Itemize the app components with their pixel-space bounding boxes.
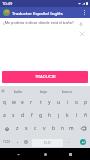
button[interactable]: a: [0, 109, 9, 122]
button[interactable]: z: [13, 122, 22, 135]
staticText: b: [52, 125, 56, 132]
staticText: baño: [14, 89, 23, 94]
staticText: TRADUCIR: [35, 74, 56, 80]
button[interactable]: t: [36, 96, 45, 109]
button[interactable]: .: [64, 135, 74, 148]
staticText: p: [84, 99, 88, 106]
button[interactable]: e: [18, 96, 27, 109]
button[interactable]: bajo: [31, 86, 55, 96]
button[interactable]: Voice input: [77, 20, 85, 28]
button[interactable]: u: [54, 96, 63, 109]
button[interactable]: Clear text: [78, 30, 85, 37]
staticText: s: [12, 112, 15, 119]
staticText: t: [40, 99, 42, 106]
button[interactable]: baño: [6, 86, 31, 96]
staticText: c: [34, 125, 37, 132]
button[interactable]: More suggestions: [0, 86, 6, 96]
button[interactable]: Recent apps: [64, 148, 77, 160]
staticText: z: [16, 125, 19, 132]
staticText: f: [31, 112, 33, 119]
staticText: g: [39, 112, 43, 119]
staticText: h: [48, 112, 52, 119]
button[interactable]: Emoji: [21, 135, 31, 148]
button[interactable]: f: [27, 109, 36, 122]
button[interactable]: v: [40, 122, 49, 135]
button[interactable]: p: [81, 96, 90, 109]
button[interactable]: Backspace: [76, 122, 90, 135]
button[interactable]: Back: [12, 148, 25, 160]
staticText: x: [25, 125, 28, 132]
button[interactable]: ñ: [81, 109, 90, 122]
button[interactable]: s: [9, 109, 18, 122]
button[interactable]: b: [49, 122, 58, 135]
staticText: w: [12, 99, 16, 106]
staticText: u: [57, 99, 61, 106]
staticText: o: [75, 99, 78, 106]
staticText: v: [43, 125, 46, 132]
staticText: q: [3, 99, 7, 106]
button[interactable]: l: [72, 109, 81, 122]
staticText: i: [67, 99, 69, 106]
button[interactable]: x: [22, 122, 31, 135]
staticText: ES-ES: [44, 141, 51, 145]
button[interactable]: banco: [55, 86, 79, 96]
staticText: ñ: [84, 112, 88, 119]
button[interactable]: h: [45, 109, 54, 122]
button[interactable]: y: [45, 96, 54, 109]
staticText: 10:49: [2, 1, 13, 6]
button[interactable]: g: [36, 109, 45, 122]
button[interactable]: Space: [32, 139, 63, 147]
button[interactable]: n: [58, 122, 67, 135]
staticText: Traductor Español Inglés: [12, 10, 63, 16]
staticText: ,: [17, 138, 19, 145]
staticText: d: [21, 112, 25, 119]
button[interactable]: c: [31, 122, 40, 135]
staticText: k: [66, 112, 69, 119]
button[interactable]: q: [0, 96, 9, 109]
staticText: m: [69, 125, 74, 132]
staticText: r: [30, 99, 33, 106]
button[interactable]: Symbols: [0, 135, 13, 148]
button[interactable]: Home: [39, 148, 52, 160]
button[interactable]: TRADUCIR: [2, 71, 88, 83]
staticText: l: [76, 112, 78, 119]
staticText: bajo: [40, 89, 47, 94]
button[interactable]: More options: [79, 7, 90, 18]
button[interactable]: i: [63, 96, 72, 109]
staticText: banco: [62, 89, 72, 94]
staticText: y: [48, 99, 51, 106]
staticText: .: [68, 138, 70, 145]
button[interactable]: Enter: [80, 139, 86, 145]
staticText: e: [21, 99, 24, 106]
button[interactable]: m: [67, 122, 76, 135]
button[interactable]: r: [27, 96, 36, 109]
staticText: ¿Me podrías indicar dónde está el baño?: [3, 20, 77, 25]
staticText: n: [61, 125, 65, 132]
button[interactable]: o: [72, 96, 81, 109]
button[interactable]: k: [63, 109, 72, 122]
staticText: ?123: [3, 140, 10, 144]
button[interactable]: w: [9, 96, 18, 109]
button[interactable]: d: [18, 109, 27, 122]
staticText: a: [3, 112, 6, 119]
button[interactable]: j: [54, 109, 63, 122]
button[interactable]: ,: [13, 135, 23, 148]
button[interactable]: Shift: [0, 122, 13, 135]
staticText: j: [58, 112, 60, 119]
